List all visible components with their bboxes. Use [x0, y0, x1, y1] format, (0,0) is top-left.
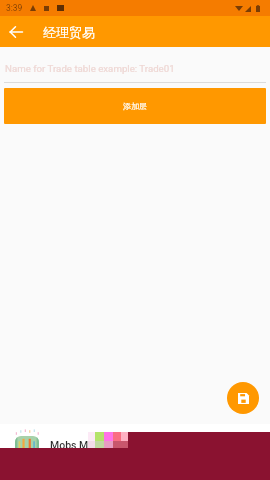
button[interactable]: Save: [227, 382, 259, 414]
staticText: 3:39: [6, 3, 23, 13]
staticText: Name for Trade table example: Trade01: [5, 63, 175, 74]
staticText: Mobs Ma: [50, 439, 94, 451]
button[interactable]: Back: [0, 16, 31, 47]
staticText: 经理贸易: [43, 24, 95, 40]
staticText: 添加层: [123, 101, 147, 111]
button[interactable]: 添加层: [4, 88, 266, 124]
